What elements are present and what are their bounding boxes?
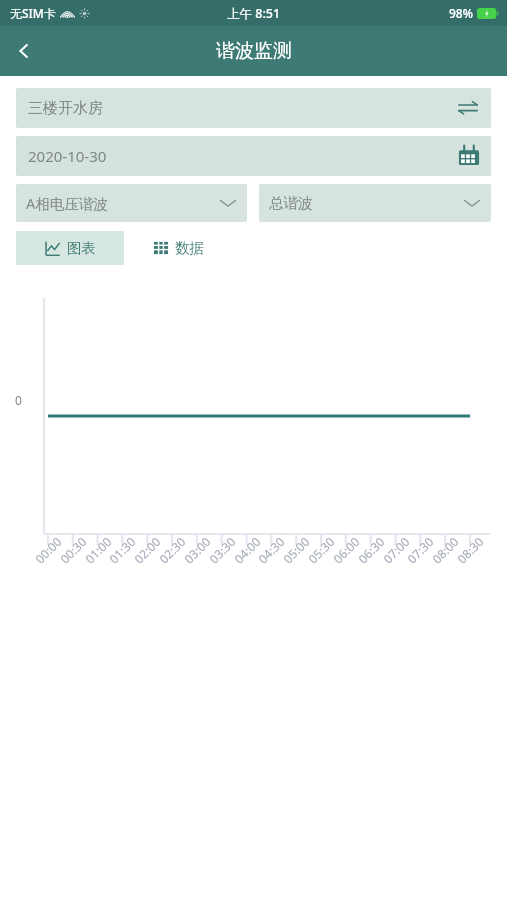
staticText: 06:30 — [344, 523, 398, 577]
button[interactable]: 三楼开水房 — [16, 88, 491, 128]
staticText: 上午 8:51 — [227, 5, 281, 22]
staticText: 01:00 — [71, 523, 125, 577]
staticText: 08:00 — [418, 523, 472, 577]
staticText: 无SIM卡 — [10, 5, 56, 21]
staticText: 07:00 — [369, 523, 423, 577]
staticText: 00:00 — [21, 523, 75, 577]
staticText: 03:00 — [170, 523, 224, 577]
button[interactable]: Back — [0, 27, 48, 75]
staticText: 05:30 — [294, 523, 348, 577]
staticText: 98% — [449, 5, 473, 21]
other: Pick date — [457, 144, 481, 168]
staticText: 04:00 — [220, 523, 274, 577]
other: Switch — [457, 97, 479, 119]
button[interactable]: 2020-10-30 — [16, 136, 491, 176]
staticText: 2020-10-30 — [28, 146, 457, 166]
staticText: 0 — [15, 392, 22, 408]
button[interactable]: 图表 — [16, 231, 124, 265]
staticText: 谐波监测 — [216, 39, 292, 63]
button[interactable]: A相电压谐波 — [16, 184, 247, 222]
staticText: 三楼开水房 — [28, 99, 457, 118]
button[interactable]: 数据 — [124, 231, 232, 265]
staticText: 02:00 — [120, 523, 174, 577]
staticText: 02:30 — [145, 523, 199, 577]
staticText: 00:30 — [46, 523, 100, 577]
staticText: 04:30 — [244, 523, 298, 577]
staticText: 05:00 — [269, 523, 323, 577]
staticText: 08:30 — [443, 523, 497, 577]
staticText: 总谐波 — [269, 194, 463, 212]
staticText: A相电压谐波 — [26, 193, 219, 213]
button[interactable]: 总谐波 — [259, 184, 491, 222]
staticText: 数据 — [175, 239, 204, 257]
staticText: 图表 — [67, 239, 96, 257]
staticText: 01:30 — [95, 523, 149, 577]
staticText: 07:30 — [393, 523, 447, 577]
staticText: 03:30 — [195, 523, 249, 577]
staticText: 06:00 — [319, 523, 373, 577]
